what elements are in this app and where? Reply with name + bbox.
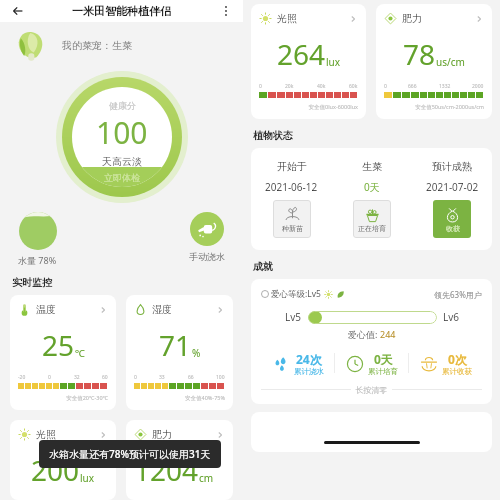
staticText: 长按清零 (351, 384, 392, 395)
staticText: 光照 (36, 428, 56, 441)
staticText: 一米田智能种植伴侣 (72, 4, 171, 18)
staticText: 60k (349, 83, 358, 90)
staticText: 立即体检 (104, 172, 140, 183)
staticText: 200 (31, 451, 80, 489)
button[interactable]: 收获 (433, 200, 471, 238)
staticText: 66 (188, 374, 194, 381)
staticText: 安全值0lux-6000lux (259, 103, 358, 111)
staticText: 0 (134, 374, 137, 381)
staticText: 安全值50us/cm-2000us/cm (384, 103, 484, 111)
staticText: ℃ (75, 346, 85, 360)
staticText: 100 (96, 112, 148, 153)
staticText: Lv6 (443, 310, 460, 324)
button[interactable]: 肥力 (126, 420, 233, 500)
staticText: 爱心等级:Lv5 (271, 288, 321, 300)
staticText: 累计收获 (442, 367, 472, 376)
staticText: 71 (159, 326, 192, 364)
button[interactable]: 肥力 (376, 4, 492, 119)
staticText: 安全值20℃-30℃ (18, 394, 108, 402)
staticText: 温度 (36, 303, 56, 316)
staticText: 光照 (277, 12, 297, 25)
staticText: lux (326, 55, 341, 69)
staticText: 湿度 (152, 303, 172, 316)
staticText: 32 (74, 374, 80, 381)
staticText: 种新苗 (282, 224, 303, 233)
staticText: 水量 78% (18, 254, 57, 266)
staticText: 0 (384, 83, 387, 90)
button[interactable]: 0次 (409, 351, 482, 376)
staticText: 0 (259, 83, 262, 90)
staticText: lux (80, 471, 95, 485)
staticText: 0天 (374, 351, 393, 367)
staticText: 收获 (446, 224, 460, 233)
staticText: 60 (102, 374, 108, 381)
staticText: 24次 (296, 351, 322, 367)
staticText: 0 (48, 374, 51, 381)
staticText: 20k (285, 83, 294, 90)
staticText: 666 (408, 83, 417, 90)
button[interactable]: 健康分 (72, 87, 172, 187)
staticText: 安全值40%-75% (134, 394, 225, 402)
staticText: 33 (159, 374, 165, 381)
button[interactable]: 种新苗 (273, 200, 311, 238)
staticText: 40k (317, 83, 326, 90)
staticText: 1204 (134, 451, 199, 489)
staticText: us/cm (199, 457, 225, 485)
staticText: 25 (42, 326, 75, 364)
staticText: 天高云淡 (102, 155, 142, 168)
staticText: 78 (403, 35, 436, 73)
button[interactable]: Back (8, 1, 28, 21)
button[interactable]: 水量 78% (18, 212, 57, 266)
staticText: 2021-06-12 (265, 180, 318, 194)
button[interactable]: 24次 (261, 351, 334, 376)
staticText: 累计培育 (368, 367, 398, 376)
staticText: Lv5 (285, 310, 302, 324)
staticText: 累计浇水 (294, 367, 324, 376)
button[interactable]: 手动浇水 (189, 212, 225, 262)
staticText: 正在培育 (358, 224, 386, 233)
staticText: 生菜 (362, 160, 382, 173)
staticText: 2000 (472, 83, 484, 90)
staticText: 成就 (253, 260, 273, 273)
staticText: 2021-07-02 (426, 180, 479, 194)
staticText: % (192, 346, 201, 360)
button[interactable]: 0天 (335, 351, 408, 376)
staticText: 爱心值: (348, 328, 380, 340)
button[interactable]: More options (217, 2, 235, 20)
staticText: -20 (18, 374, 26, 381)
staticText: 肥力 (152, 428, 172, 441)
button[interactable]: 正在培育 (353, 200, 391, 238)
button[interactable]: 湿度 (126, 295, 233, 410)
staticText: 0天 (364, 180, 380, 194)
staticText: 植物状态 (253, 129, 293, 142)
staticText: 我的菜宠：生菜 (62, 39, 132, 52)
staticText: 0次 (448, 351, 467, 367)
staticText: 100 (216, 374, 225, 381)
staticText: 实时监控 (12, 276, 52, 289)
staticText: 开始于 (277, 160, 307, 173)
staticText: 水箱水量还有78%预计可以使用31天 (49, 447, 211, 461)
button[interactable]: 光照 (10, 420, 116, 500)
staticText: 1332 (439, 83, 451, 90)
staticText: 244 (380, 328, 396, 340)
button[interactable]: 温度 (10, 295, 116, 410)
staticText: 预计成熟 (432, 160, 472, 173)
staticText: 手动浇水 (189, 251, 225, 262)
staticText: 肥力 (402, 12, 422, 25)
staticText: 264 (277, 35, 326, 73)
staticText: us/cm (436, 55, 465, 69)
staticText: 健康分 (109, 100, 136, 111)
button[interactable]: 光照 (251, 4, 366, 119)
staticText: 领先63%用户 (434, 289, 482, 300)
